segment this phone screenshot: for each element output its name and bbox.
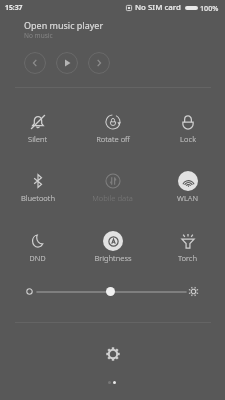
button[interactable]: Play bbox=[56, 52, 78, 74]
staticText: No SIM card bbox=[135, 2, 181, 13]
staticText: Open music player bbox=[24, 19, 104, 31]
button[interactable]: Torch bbox=[150, 231, 225, 265]
staticText: Torch bbox=[178, 253, 197, 263]
staticText: Silent bbox=[28, 134, 47, 144]
staticText: Rotate off bbox=[96, 134, 130, 144]
button[interactable]: Brightness slider bbox=[106, 287, 115, 296]
staticText: Brightness bbox=[94, 253, 132, 263]
button[interactable]: Previous bbox=[24, 52, 46, 74]
button[interactable]: Rotate off bbox=[75, 112, 150, 146]
staticText: No music bbox=[24, 31, 53, 40]
button[interactable]: Lock bbox=[150, 112, 225, 146]
staticText: DND bbox=[29, 253, 46, 263]
button[interactable]: Silent bbox=[0, 112, 75, 146]
staticText: 100% bbox=[200, 3, 219, 13]
button[interactable]: Bluetooth bbox=[0, 171, 75, 205]
button[interactable]: Next bbox=[88, 52, 110, 74]
button[interactable]: Brightness bbox=[75, 231, 150, 265]
staticText: Lock bbox=[180, 134, 196, 144]
staticText: 15:37 bbox=[5, 3, 23, 12]
staticText: Bluetooth bbox=[21, 193, 55, 203]
button[interactable]: Settings bbox=[99, 340, 127, 368]
button[interactable]: Mobile data bbox=[75, 171, 150, 205]
staticText: WLAN bbox=[177, 193, 198, 203]
staticText: Mobile data bbox=[92, 193, 133, 203]
button[interactable]: WLAN bbox=[150, 171, 225, 205]
button[interactable]: DND bbox=[0, 231, 75, 265]
